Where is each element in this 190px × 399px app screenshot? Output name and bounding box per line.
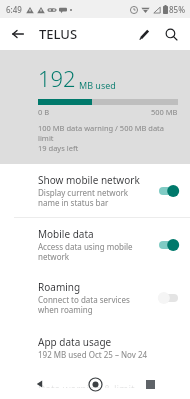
staticText: TELUS [39,25,78,43]
staticText: Show mobile network [38,173,140,187]
button[interactable]: Search [159,22,183,46]
button[interactable]: On [155,182,182,200]
staticText: 85% [169,4,185,15]
staticText: Roaming [38,280,81,294]
staticText: 192 [38,63,76,93]
staticText: Mobile data [38,227,94,241]
staticText: 6:49 [6,4,22,15]
button[interactable]: Off [155,289,182,307]
button[interactable]: Data warning & limit [0,371,190,399]
staticText: 100 MB data warning / 500 MB data limit [38,123,178,143]
staticText: Access data using mobile network [38,241,149,262]
staticText: App data usage [38,335,112,349]
staticText: Data warning & limit [38,382,135,388]
staticText: Connect to data services when roaming [38,294,149,315]
button[interactable]: Home [80,369,110,399]
button[interactable]: Edit [132,22,156,46]
staticText: 192 MB used Oct 25 – Nov 24 [38,349,148,360]
button[interactable]: Roaming [0,271,190,324]
button[interactable]: App data usage [0,324,190,371]
staticText: 500 MB [151,107,178,117]
staticText: MB used [79,79,116,91]
button[interactable]: Mobile data [0,218,190,271]
button[interactable]: On [155,236,182,254]
staticText: Display current network name in status b… [38,187,149,208]
button[interactable]: Show mobile network [0,164,190,217]
button[interactable]: Recent apps [135,369,165,399]
button[interactable]: Back [25,369,55,399]
staticText: 0 B [38,107,50,117]
button[interactable]: Back [7,23,29,45]
staticText: 19 days left [38,143,79,153]
